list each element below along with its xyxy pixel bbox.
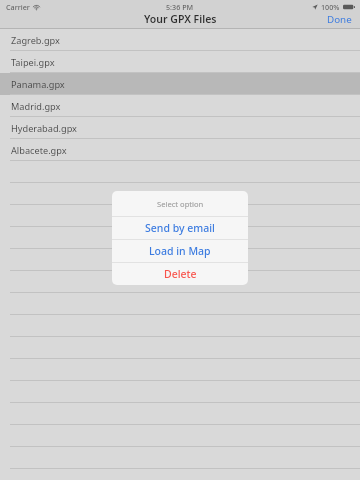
button[interactable]: Albacete.gpx <box>0 139 360 161</box>
button[interactable] <box>0 293 360 315</box>
staticText: Send by email <box>145 221 215 235</box>
button[interactable] <box>0 359 360 381</box>
button[interactable]: Done <box>327 13 360 29</box>
staticText: Your GPX Files <box>144 12 217 26</box>
button[interactable] <box>0 161 360 183</box>
staticText: Zagreb.gpx <box>11 34 60 47</box>
staticText: 5:36 PM <box>166 2 194 12</box>
staticText: Madrid.gpx <box>11 100 61 113</box>
button[interactable]: Panama.gpx <box>0 73 360 95</box>
button[interactable]: Zagreb.gpx <box>0 29 360 51</box>
staticText: Panama.gpx <box>11 78 65 91</box>
button[interactable] <box>0 337 360 359</box>
staticText: Select option <box>157 199 204 209</box>
staticText: Done <box>327 13 352 26</box>
staticText: 100% <box>321 2 340 12</box>
button[interactable] <box>0 425 360 447</box>
button[interactable] <box>0 381 360 403</box>
staticText: Hyderabad.gpx <box>11 122 77 135</box>
button[interactable] <box>0 183 360 205</box>
button[interactable] <box>0 447 360 469</box>
button[interactable]: Madrid.gpx <box>0 95 360 117</box>
button[interactable]: Send by email <box>112 217 248 239</box>
staticText: Carrier <box>6 2 30 12</box>
button[interactable]: Hyderabad.gpx <box>0 117 360 139</box>
staticText: Albacete.gpx <box>11 144 67 157</box>
button[interactable] <box>0 227 360 249</box>
staticText: Taipei.gpx <box>11 56 55 69</box>
button[interactable]: Taipei.gpx <box>0 51 360 73</box>
staticText: Delete <box>164 267 197 281</box>
staticText: Load in Map <box>149 244 211 258</box>
button[interactable] <box>0 403 360 425</box>
button[interactable]: Load in Map <box>112 240 248 262</box>
button[interactable] <box>0 249 360 271</box>
button[interactable] <box>0 271 360 293</box>
button[interactable]: Delete <box>112 263 248 285</box>
button[interactable] <box>0 315 360 337</box>
button[interactable] <box>0 205 360 227</box>
